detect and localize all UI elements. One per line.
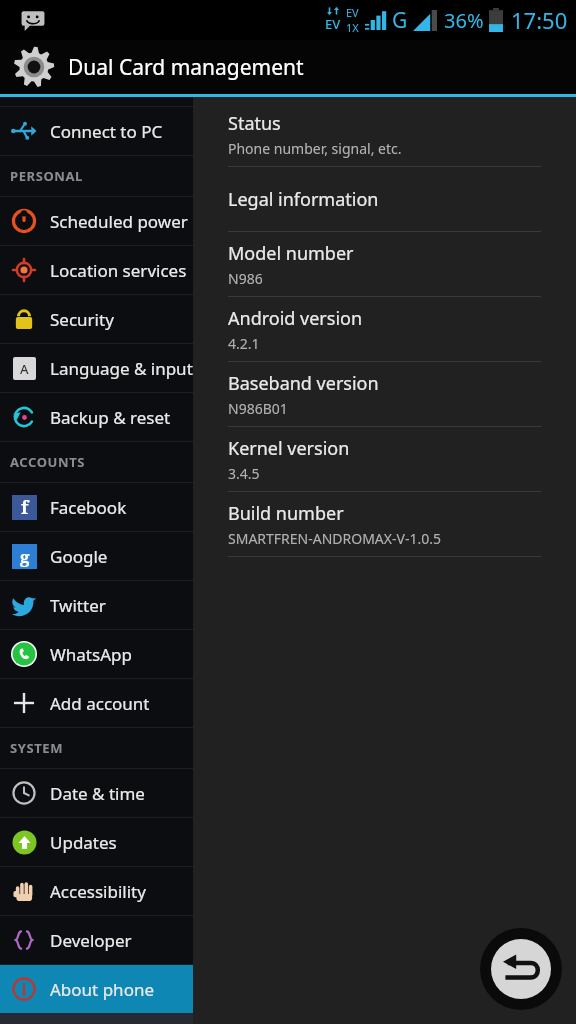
staticText: Google xyxy=(50,545,108,568)
staticText: Facebook xyxy=(50,496,127,519)
staticText: Legal information xyxy=(228,187,379,212)
staticText: EV xyxy=(325,15,341,33)
staticText: Scheduled power o xyxy=(50,210,193,233)
staticText: 3.4.5 xyxy=(228,464,260,483)
staticText: N986 xyxy=(228,269,263,288)
staticText: Language & input xyxy=(50,357,193,380)
staticText: Kernel version xyxy=(228,436,350,461)
button[interactable]: Location services xyxy=(0,246,193,294)
button[interactable]: Developer options xyxy=(0,916,193,964)
button[interactable]: Security xyxy=(0,295,193,343)
button[interactable]: Kernel version xyxy=(193,427,576,491)
button[interactable]: Connect to PC xyxy=(0,107,193,155)
staticText: Baseband version xyxy=(228,371,379,396)
button[interactable]: WhatsApp xyxy=(0,630,193,678)
button[interactable]: About phone xyxy=(0,965,193,1013)
button[interactable]: Legal information xyxy=(193,167,576,231)
button[interactable]: Twitter xyxy=(0,581,193,629)
button[interactable]: Baseband version xyxy=(193,362,576,426)
staticText: Status xyxy=(228,111,281,136)
staticText: Android version xyxy=(228,306,363,331)
staticText: g xyxy=(20,545,30,568)
button[interactable]: g xyxy=(0,532,193,580)
button[interactable]: Updates xyxy=(0,818,193,866)
staticText: Backup & reset xyxy=(50,406,171,429)
staticText: N986B01 xyxy=(228,399,288,418)
staticText: Phone number, signal, etc. xyxy=(228,139,402,158)
staticText: WhatsApp xyxy=(50,643,132,666)
button[interactable]: Backup & reset xyxy=(0,393,193,441)
button[interactable]: Build number xyxy=(193,492,576,556)
staticText: Security xyxy=(50,308,114,331)
staticText: Updates xyxy=(50,831,117,854)
button[interactable]: f xyxy=(0,483,193,531)
staticText: 36% xyxy=(444,7,484,34)
button[interactable]: Status xyxy=(193,102,576,166)
staticText: Connect to PC xyxy=(50,120,163,143)
staticText: Dual Card management xyxy=(68,53,304,82)
staticText: ACCOUNTS xyxy=(10,453,86,471)
staticText: EV xyxy=(346,5,359,20)
staticText: Developer options xyxy=(50,929,193,952)
staticText: SMARTFREN-ANDROMAX-V-1.0.5 xyxy=(228,529,441,548)
staticText: Accessibility xyxy=(50,880,146,903)
staticText: Add account xyxy=(50,692,150,715)
staticText: A xyxy=(20,360,29,378)
staticText: Date & time xyxy=(50,782,145,805)
button[interactable]: A xyxy=(0,344,193,392)
staticText: 1X xyxy=(346,20,359,35)
staticText: 17:50 xyxy=(511,5,568,35)
staticText: Twitter xyxy=(50,594,106,617)
staticText: G xyxy=(392,6,408,35)
button[interactable]: Model number xyxy=(193,232,576,296)
staticText: f xyxy=(21,495,29,520)
staticText: 4.2.1 xyxy=(228,334,260,353)
button[interactable]: Android version xyxy=(193,297,576,361)
button[interactable]: Scheduled power o xyxy=(0,197,193,245)
staticText: SYSTEM xyxy=(10,739,64,757)
staticText: About phone xyxy=(50,978,155,1001)
button[interactable]: Back xyxy=(480,928,562,1010)
button[interactable]: Date & time xyxy=(0,769,193,817)
button[interactable]: Dual Card management xyxy=(0,40,576,94)
staticText: Build number xyxy=(228,501,344,526)
button[interactable]: Add account xyxy=(0,679,193,727)
staticText: PERSONAL xyxy=(10,167,83,185)
staticText: Model number xyxy=(228,241,354,266)
button[interactable]: Accessibility xyxy=(0,867,193,915)
staticText: Location services xyxy=(50,259,187,282)
